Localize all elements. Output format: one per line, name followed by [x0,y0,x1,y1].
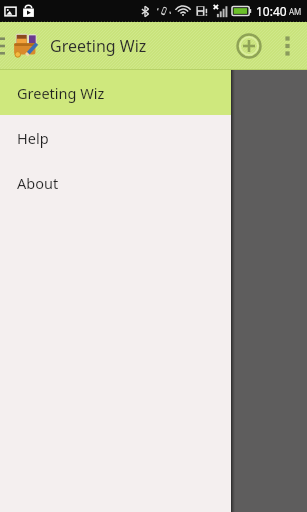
button[interactable]: Help [0,115,231,160]
button[interactable]: More options [271,24,303,68]
staticText: AM [289,6,302,17]
staticText: 10:40 [256,3,287,19]
button[interactable]: Greeting Wiz [0,70,231,115]
staticText: Help [17,128,49,148]
button[interactable]: Add [227,24,271,68]
button[interactable]: About [0,160,231,205]
staticText: Greeting Wiz [17,83,105,103]
button[interactable]: Open navigation drawer [0,22,12,70]
staticText: Greeting Wiz [50,35,147,57]
staticText: About [17,173,59,193]
